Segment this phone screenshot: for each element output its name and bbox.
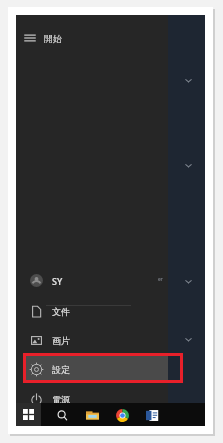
staticText: 開始 (44, 33, 62, 44)
button[interactable]: 画片 (24, 327, 168, 354)
staticText: 電源 (52, 394, 70, 405)
button[interactable]: Menu (22, 27, 102, 49)
staticText: SY (52, 275, 63, 287)
staticText: er (158, 276, 163, 283)
button[interactable]: File Explorer (81, 404, 103, 426)
button[interactable]: 文件 (24, 298, 168, 325)
button[interactable]: Word (141, 404, 163, 426)
button[interactable]: Start (16, 403, 41, 426)
button[interactable]: SY (24, 267, 168, 294)
button[interactable]: 設定 (24, 356, 168, 383)
button[interactable]: 電源 (24, 386, 168, 413)
staticText: 設定 (52, 364, 70, 375)
staticText: 文件 (52, 306, 70, 317)
staticText: 画片 (52, 335, 70, 346)
button[interactable]: Search (51, 404, 73, 426)
button[interactable]: Chrome (111, 404, 133, 426)
